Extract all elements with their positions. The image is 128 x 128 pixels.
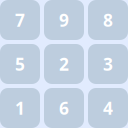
button[interactable]: 6 — [44, 88, 84, 128]
staticText: 8 — [103, 8, 113, 31]
staticText: 3 — [103, 52, 113, 75]
staticText: 7 — [15, 8, 25, 31]
staticText: 6 — [59, 96, 69, 119]
button[interactable]: 4 — [88, 88, 128, 128]
button[interactable]: 7 — [0, 0, 40, 40]
button[interactable]: 2 — [44, 44, 84, 84]
staticText: 1 — [15, 96, 25, 119]
staticText: 4 — [103, 96, 113, 119]
button[interactable]: 5 — [0, 44, 40, 84]
button[interactable]: 1 — [0, 88, 40, 128]
button[interactable]: 9 — [44, 0, 84, 40]
staticText: 9 — [59, 8, 69, 31]
staticText: 5 — [15, 52, 25, 75]
button[interactable]: 8 — [88, 0, 128, 40]
button[interactable]: 3 — [88, 44, 128, 84]
staticText: 2 — [59, 52, 69, 75]
